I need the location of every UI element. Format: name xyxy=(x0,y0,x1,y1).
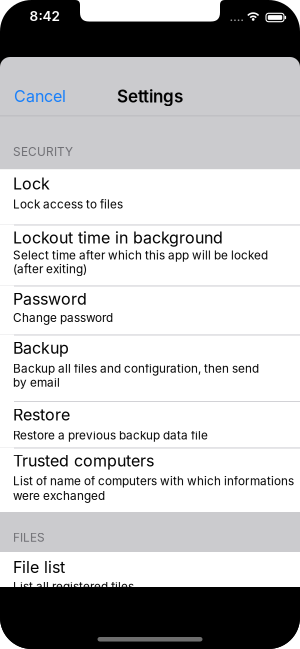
staticText: SECURITY xyxy=(13,145,73,159)
button[interactable]: Backup xyxy=(0,334,300,401)
staticText: by email xyxy=(13,375,60,390)
staticText: Select time after which this app will be… xyxy=(13,248,268,262)
staticText: 8:42 xyxy=(29,8,59,24)
button[interactable]: Password xyxy=(0,285,300,334)
staticText: Backup all files and configuration, then… xyxy=(13,361,259,376)
staticText: Cancel xyxy=(14,86,66,106)
staticText: Lockout time in background xyxy=(13,228,223,247)
staticText: Restore a previous backup data file xyxy=(13,428,208,442)
staticText: Trusted computers xyxy=(13,451,154,470)
staticText: were exchanged xyxy=(13,489,105,503)
staticText: (after exiting) xyxy=(13,262,87,276)
button[interactable]: Lockout time in background xyxy=(0,224,300,285)
staticText: List all registered files xyxy=(13,579,134,594)
button[interactable]: Restore xyxy=(0,401,300,447)
staticText: Lock access to files xyxy=(13,197,123,211)
staticText: Lock xyxy=(13,174,50,193)
button[interactable]: Cancel xyxy=(0,78,76,114)
staticText: File list xyxy=(13,557,65,577)
staticText: List of name of computers with which inf… xyxy=(13,474,294,488)
staticText: FILES xyxy=(13,530,45,544)
button[interactable]: Trusted computers xyxy=(0,447,300,512)
button[interactable]: File list xyxy=(0,552,300,599)
staticText: Backup xyxy=(13,338,69,358)
staticText: Settings xyxy=(117,86,183,107)
staticText: Change password xyxy=(13,311,113,325)
button[interactable]: Lock xyxy=(0,169,300,224)
staticText: Password xyxy=(13,289,87,309)
staticText: Restore xyxy=(13,405,70,424)
